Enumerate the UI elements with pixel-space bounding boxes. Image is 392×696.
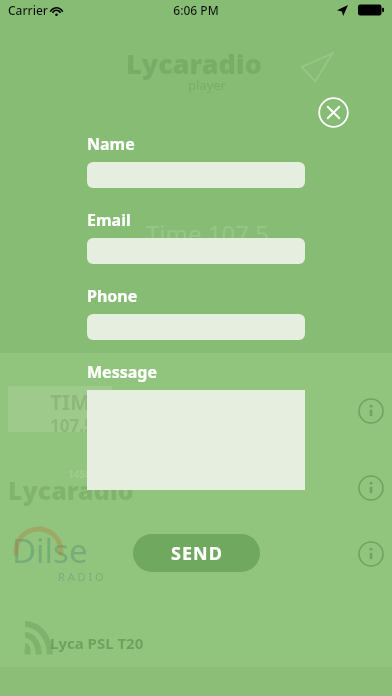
button[interactable]	[87, 238, 305, 264]
staticText: Email	[87, 209, 131, 231]
staticText: Name	[87, 133, 135, 155]
staticText: TIME	[50, 388, 102, 417]
staticText: SEND	[171, 541, 223, 566]
staticText: 107.5	[50, 414, 94, 437]
staticText: Lycaradio	[126, 45, 262, 82]
staticText: player	[188, 76, 226, 94]
button[interactable]: Close	[318, 97, 349, 128]
staticText: Message	[87, 361, 157, 383]
staticText: 1458	[68, 467, 91, 481]
staticText: Lycaradio	[8, 473, 134, 507]
staticText: Lyca PSL T20	[50, 633, 144, 653]
staticText: Phone	[87, 285, 138, 307]
button[interactable]	[87, 314, 305, 340]
staticText: Carrier	[8, 2, 48, 18]
staticText: 6:06 PM	[173, 2, 219, 18]
button[interactable]: SEND	[133, 534, 260, 572]
button[interactable]	[8, 386, 112, 432]
staticText: Time 107.5	[146, 217, 270, 250]
staticText: R A D I O	[58, 569, 104, 584]
staticText: Dilse	[12, 528, 88, 573]
button[interactable]	[87, 162, 305, 188]
